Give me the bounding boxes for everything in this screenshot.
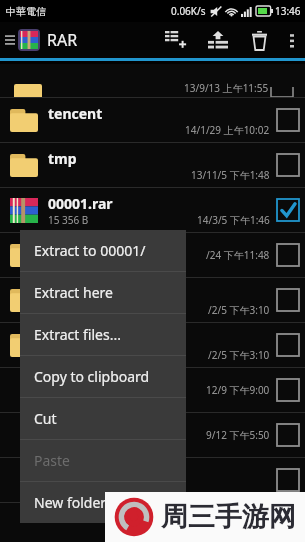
staticText: RAR bbox=[47, 29, 78, 51]
button[interactable]: Delete bbox=[239, 22, 279, 58]
button[interactable]: 00001.rar bbox=[0, 188, 305, 232]
staticText: 13:46 bbox=[275, 4, 301, 18]
button[interactable]: /24 下午11:48 bbox=[0, 233, 305, 277]
staticText: 14/3/5 下午1:46 bbox=[197, 213, 270, 227]
staticText: /2/5 下午3:10 bbox=[208, 348, 270, 362]
button[interactable]: Add to archive bbox=[155, 22, 197, 58]
staticText: 12/9 下午9:00 bbox=[206, 383, 270, 397]
button[interactable]: Navigation drawer bbox=[3, 29, 80, 51]
button[interactable]: 9/12 下午5:50 bbox=[0, 413, 305, 457]
staticText: Extract to 00001/ bbox=[34, 241, 146, 260]
staticText: Copy to clipboard bbox=[34, 367, 150, 386]
staticText: 14/1/29 上午10:02 bbox=[185, 123, 270, 137]
button[interactable]: Cut bbox=[20, 398, 186, 439]
staticText: 13/9/13 上午11:55 bbox=[184, 81, 269, 95]
button[interactable]: Extract here bbox=[20, 272, 186, 313]
staticText: 9/12 下午5:50 bbox=[206, 428, 270, 442]
button[interactable]: 12/9 下午9:00 bbox=[0, 368, 305, 412]
button[interactable]: New folder bbox=[20, 482, 186, 523]
staticText: Paste bbox=[34, 451, 70, 470]
button[interactable]: More options bbox=[279, 22, 305, 58]
button[interactable]: Extract to 00001/ bbox=[20, 230, 186, 271]
button[interactable]: Extract bbox=[197, 22, 239, 58]
button[interactable]: Copy to clipboard bbox=[20, 356, 186, 397]
staticText: 15 356 B bbox=[48, 213, 89, 227]
staticText: 13/11/5 下午1:48 bbox=[191, 168, 270, 182]
staticText: /24 下午11:48 bbox=[206, 248, 270, 262]
button[interactable]: Extract files... bbox=[20, 314, 186, 355]
staticText: 00001.rar bbox=[48, 194, 113, 213]
staticText: Cut bbox=[34, 409, 57, 428]
button[interactable] bbox=[0, 458, 305, 502]
staticText: tencent bbox=[48, 104, 103, 123]
staticText: 中華電信 bbox=[6, 5, 46, 18]
button[interactable]: 4967-8cde- bbox=[0, 323, 305, 367]
staticText: tmp bbox=[48, 149, 77, 168]
staticText: /2/5 下午3:10 bbox=[208, 303, 270, 317]
button[interactable]: bd3-ab3a- bbox=[0, 278, 305, 322]
staticText: New folder bbox=[34, 493, 107, 512]
staticText: Extract files... bbox=[34, 325, 121, 344]
staticText: bd3-ab3a- bbox=[48, 284, 117, 303]
staticText: Extract here bbox=[34, 283, 113, 302]
staticText: 4967-8cde- bbox=[48, 329, 122, 348]
button[interactable]: Paste bbox=[20, 440, 186, 481]
button[interactable]: tencent bbox=[0, 98, 305, 142]
button[interactable]: tmp bbox=[0, 143, 305, 187]
staticText: 0.06K/s bbox=[171, 4, 206, 18]
staticText: 周三手游网 bbox=[161, 500, 296, 534]
